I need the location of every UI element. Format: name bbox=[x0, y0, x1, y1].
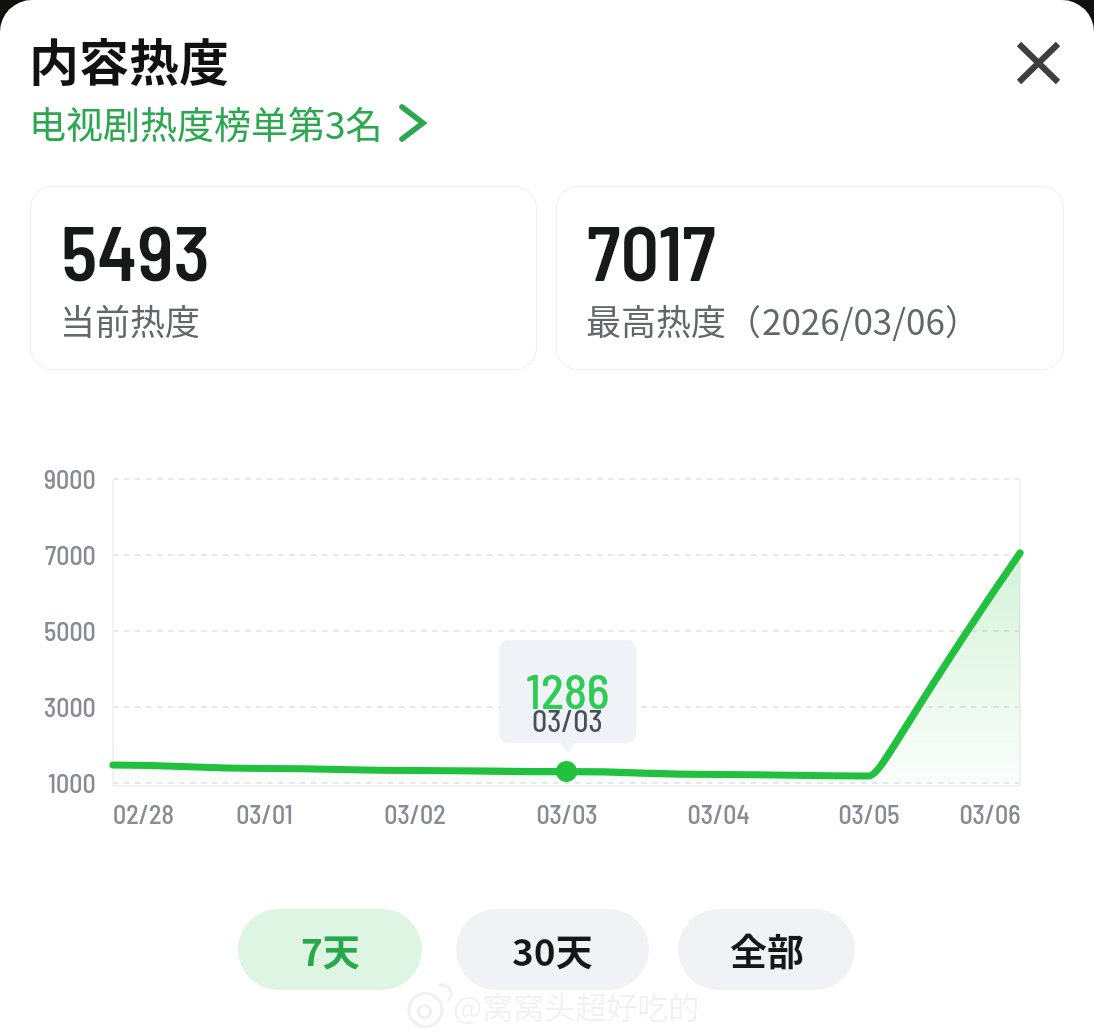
staticText: 5493 bbox=[61, 205, 210, 296]
staticText: 03/03 bbox=[536, 798, 598, 829]
staticText: 03/01 bbox=[236, 798, 293, 829]
staticText: 全部 bbox=[730, 923, 804, 977]
staticText: @窝窝头超好吃的 bbox=[453, 983, 700, 1028]
staticText: 03/03 bbox=[532, 702, 603, 738]
staticText: 1286 bbox=[526, 661, 610, 719]
staticText: 内容热度 bbox=[29, 23, 229, 95]
staticText: 7017 bbox=[587, 205, 716, 296]
staticText: 2026/03/06） bbox=[762, 294, 980, 345]
staticText: 1000 bbox=[48, 767, 96, 798]
staticText: 03/02 bbox=[384, 798, 446, 829]
button[interactable]: 5493 bbox=[31, 187, 536, 369]
staticText: 30天 bbox=[512, 923, 593, 977]
button[interactable]: 7天 bbox=[238, 909, 422, 990]
staticText: 03/04 bbox=[687, 798, 750, 829]
staticText: 当前热度 bbox=[60, 294, 201, 345]
staticText: 最高热度（ bbox=[586, 294, 762, 345]
button[interactable]: 电视剧热度榜单第3名 bbox=[29, 96, 426, 150]
button[interactable]: 30天 bbox=[456, 909, 649, 990]
staticText: 03/05 bbox=[838, 798, 900, 829]
staticText: 7000 bbox=[45, 539, 96, 570]
staticText: 5000 bbox=[44, 615, 96, 646]
staticText: 3000 bbox=[44, 691, 96, 722]
staticText: 03/06 bbox=[959, 798, 1021, 829]
button[interactable]: 全部 bbox=[678, 909, 855, 990]
staticText: 9000 bbox=[44, 463, 96, 494]
staticText: 7天 bbox=[301, 923, 360, 977]
staticText: 02/28 bbox=[113, 798, 174, 829]
button[interactable]: Close bbox=[1004, 28, 1073, 97]
staticText: 电视剧热度榜单第3名 bbox=[29, 96, 383, 150]
button[interactable]: 7017 bbox=[557, 187, 1063, 369]
